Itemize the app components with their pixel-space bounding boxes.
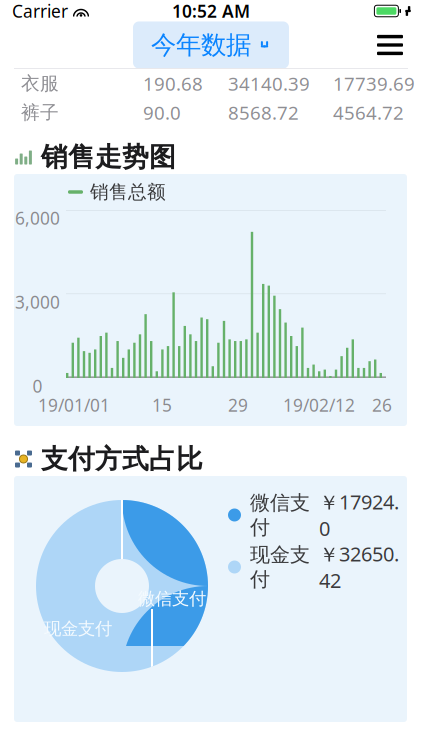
staticText: 34140.39: [228, 71, 310, 96]
staticText: 现金支付: [44, 618, 112, 639]
staticText: 微信支付: [250, 490, 310, 539]
staticText: 8568.72: [228, 100, 299, 125]
button[interactable]: Menu: [369, 27, 411, 63]
staticText: 19/01/01: [38, 393, 110, 416]
staticText: 微信支付: [138, 588, 206, 609]
staticText: ￥32650.42: [319, 540, 399, 594]
staticText: 26: [372, 393, 392, 416]
staticText: 现金支付: [250, 542, 310, 591]
staticText: 29: [228, 393, 248, 416]
staticText: 6,000: [15, 206, 60, 229]
staticText: 19/02/12: [283, 393, 355, 416]
staticText: 17739.69: [333, 71, 415, 96]
staticText: 4564.72: [333, 100, 404, 125]
staticText: 10:52 AM: [172, 0, 250, 22]
staticText: 销售总额: [90, 180, 166, 203]
staticText: 190.68: [143, 71, 203, 96]
staticText: 销售走势图: [41, 141, 176, 173]
staticText: 90.0: [143, 100, 181, 125]
staticText: 支付方式占比: [41, 443, 203, 475]
staticText: 15: [152, 393, 172, 416]
staticText: ￥17924.0: [319, 488, 399, 542]
staticText: Carrier: [12, 0, 68, 22]
staticText: 裤子: [21, 101, 59, 124]
staticText: 3,000: [15, 290, 60, 313]
button[interactable]: 今年数据: [133, 21, 289, 68]
staticText: 0: [32, 374, 42, 397]
staticText: 今年数据: [151, 29, 251, 60]
staticText: 衣服: [21, 72, 59, 95]
